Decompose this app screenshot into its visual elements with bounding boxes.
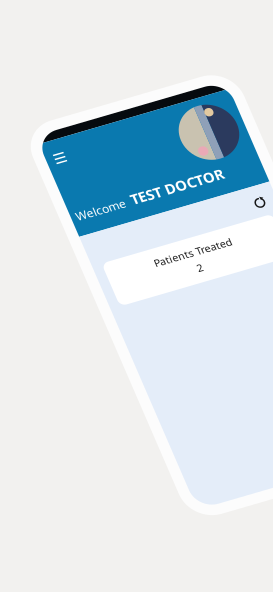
staticText: Patients Treated [59,154,141,168]
button[interactable]: Patients Treated [10,146,190,194]
button[interactable]: Refresh [176,125,189,138]
staticText: TEST DOCTOR [63,81,161,101]
